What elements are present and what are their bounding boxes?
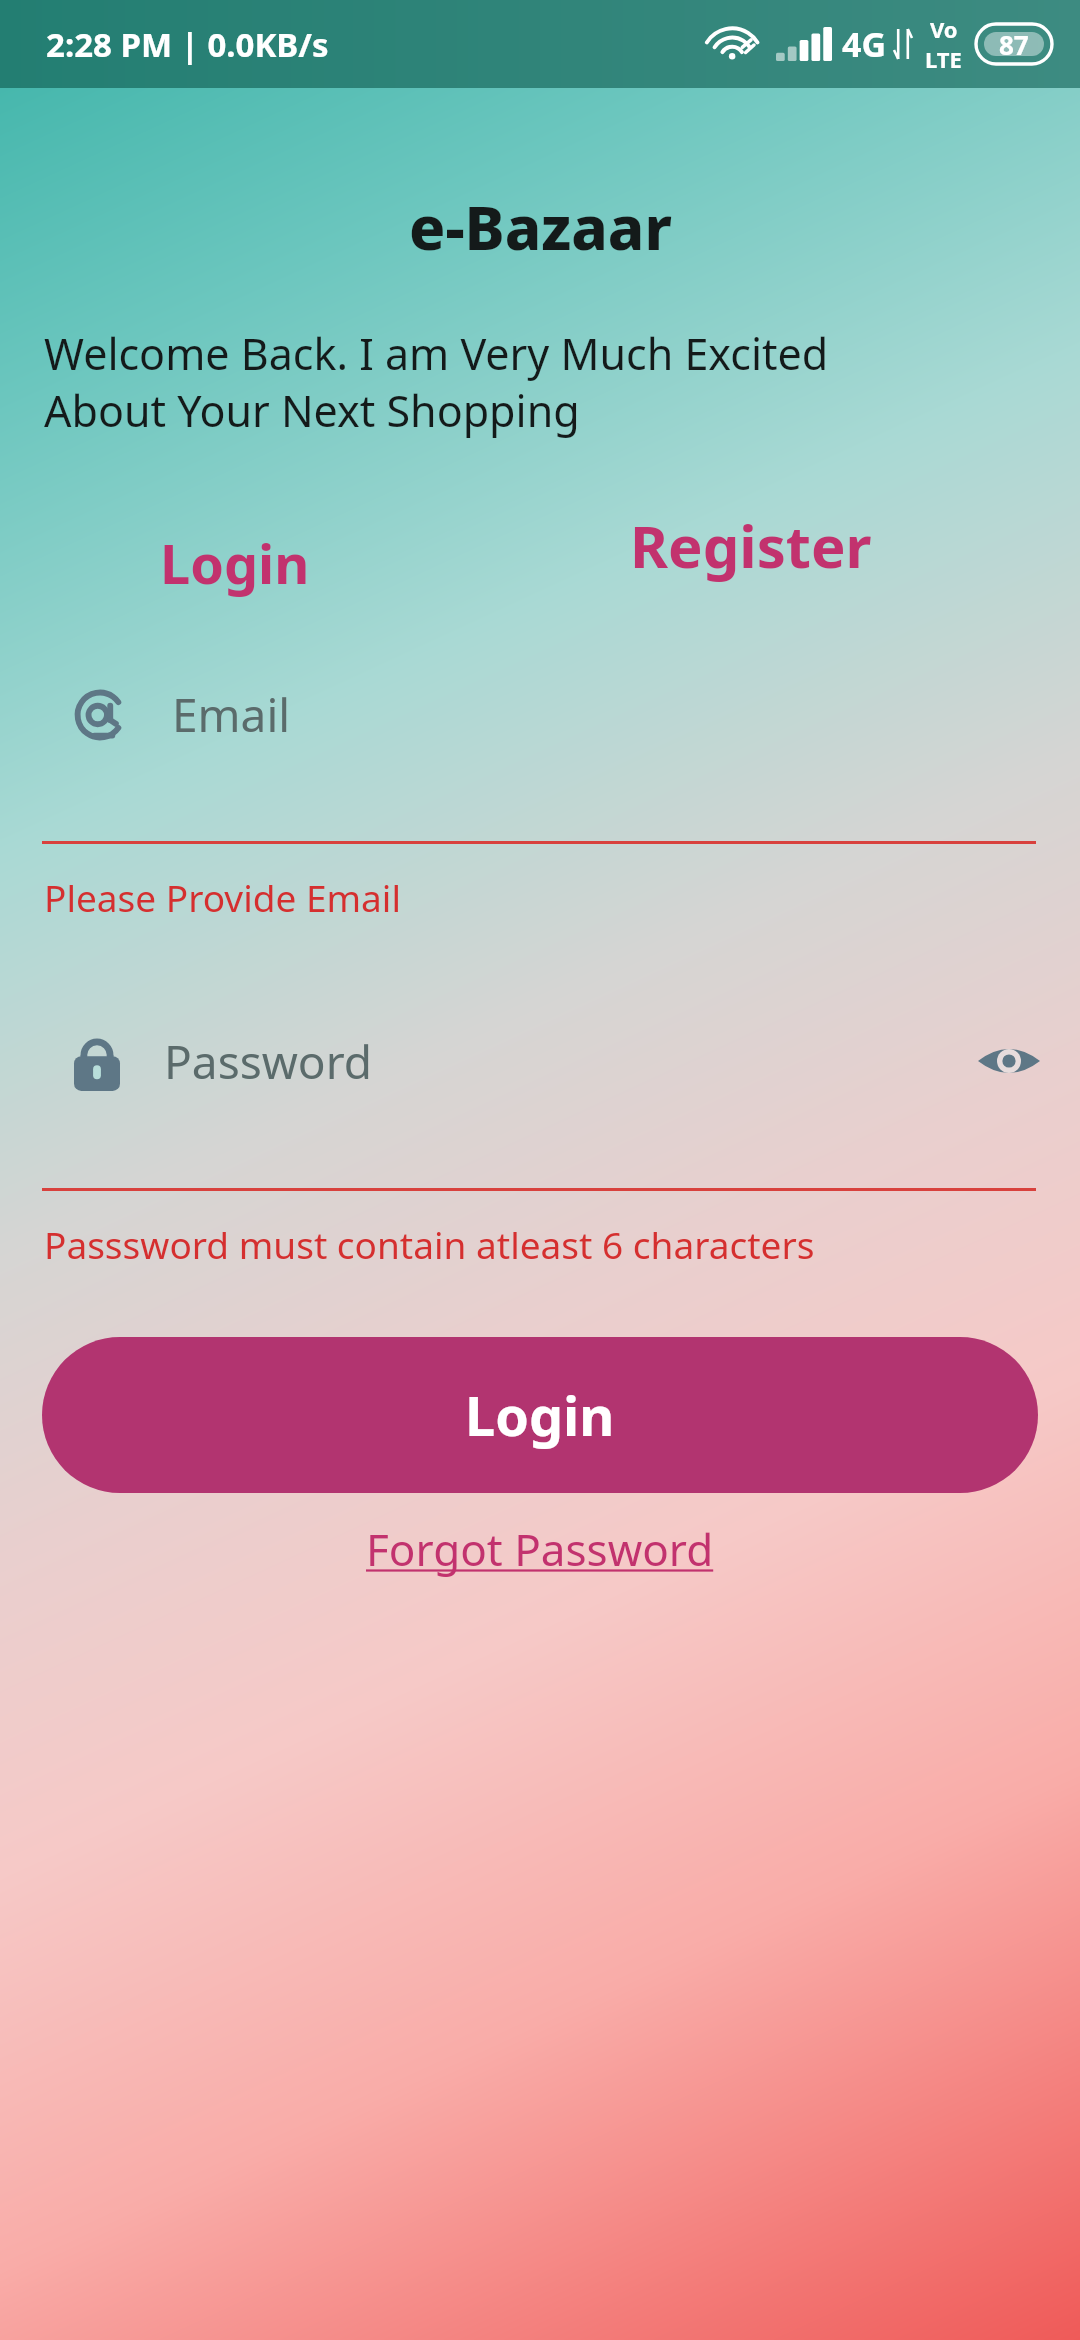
- staticText: Passsword must contain atleast 6 charact…: [44, 1219, 815, 1269]
- staticText: Password: [164, 1030, 373, 1093]
- staticText: Login: [465, 1378, 615, 1452]
- button[interactable]: Password: [0, 1006, 1080, 1116]
- staticText: Register: [630, 506, 872, 585]
- button[interactable]: Show password: [960, 1023, 1058, 1099]
- staticText: LTE: [925, 44, 962, 74]
- staticText: e-Bazaar: [409, 186, 672, 268]
- staticText: Forgot Password: [366, 1519, 714, 1579]
- staticText: 87: [999, 27, 1029, 62]
- staticText: Vo: [930, 14, 958, 44]
- staticText: 2:28 PM | 0.0KB/s: [46, 22, 329, 67]
- staticText: 4G: [842, 21, 887, 67]
- button[interactable]: Register: [596, 488, 906, 603]
- staticText: Please Provide Email: [44, 872, 401, 922]
- staticText: Welcome Back. I am Very Much Excited Abo…: [44, 324, 829, 439]
- button[interactable]: Email: [0, 659, 1080, 769]
- staticText: Login: [160, 526, 310, 600]
- button[interactable]: Forgot Password: [336, 1507, 744, 1591]
- staticText: Email: [172, 683, 291, 746]
- button[interactable]: Login: [120, 508, 350, 618]
- button[interactable]: Login: [42, 1337, 1038, 1493]
